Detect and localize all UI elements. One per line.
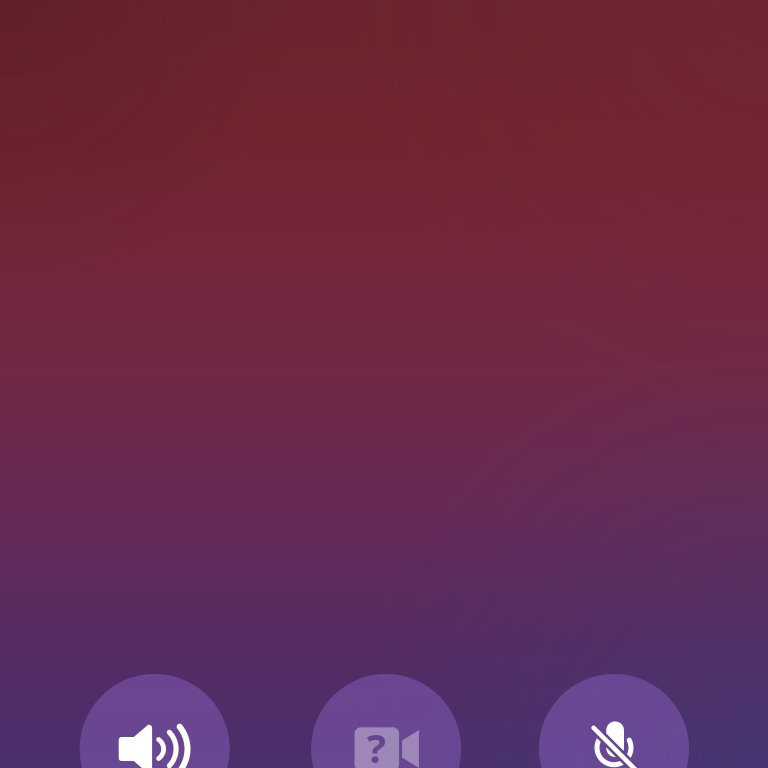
staticText: ? — [367, 721, 386, 768]
button[interactable]: FaceTime — [311, 674, 461, 768]
button[interactable]: Speaker — [80, 674, 230, 768]
button[interactable]: Mute — [539, 674, 689, 768]
